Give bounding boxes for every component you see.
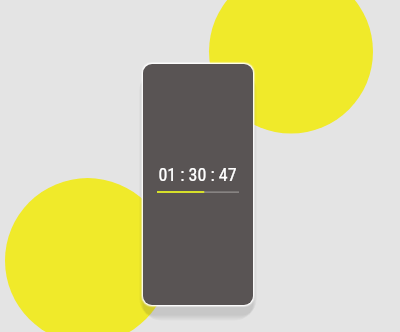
- staticText: 01 : 30 : 47: [158, 164, 237, 185]
- button[interactable]: Countdown timer preview: [143, 64, 253, 305]
